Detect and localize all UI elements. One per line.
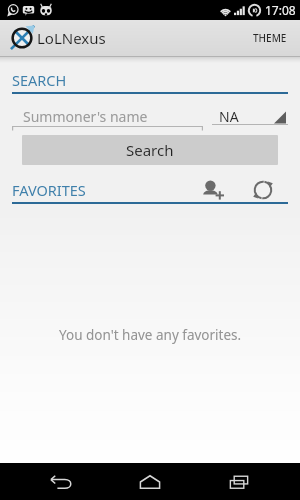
staticText: SEARCH <box>12 70 67 90</box>
staticText: THEME <box>253 31 287 45</box>
button[interactable]: LoLNexus home <box>10 26 34 50</box>
staticText: NA <box>219 107 239 122</box>
button[interactable]: Home <box>122 463 178 500</box>
staticText: Search <box>126 140 174 160</box>
staticText: Summoner's name <box>23 107 148 124</box>
button[interactable]: Recent apps <box>211 463 267 500</box>
button[interactable]: Summoner's name <box>12 107 203 130</box>
button[interactable]: NA <box>212 107 288 130</box>
button[interactable]: Back <box>33 463 89 500</box>
button[interactable]: Refresh <box>252 179 274 201</box>
staticText: LoLNexus <box>37 28 106 48</box>
staticText: You don't have any favorites. <box>59 326 242 344</box>
staticText: FAVORITES <box>12 180 86 200</box>
staticText: 17:08 <box>265 2 296 18</box>
button[interactable]: Search <box>22 135 278 165</box>
button[interactable]: Add favorite <box>201 179 223 201</box>
button[interactable]: THEME <box>249 23 291 53</box>
